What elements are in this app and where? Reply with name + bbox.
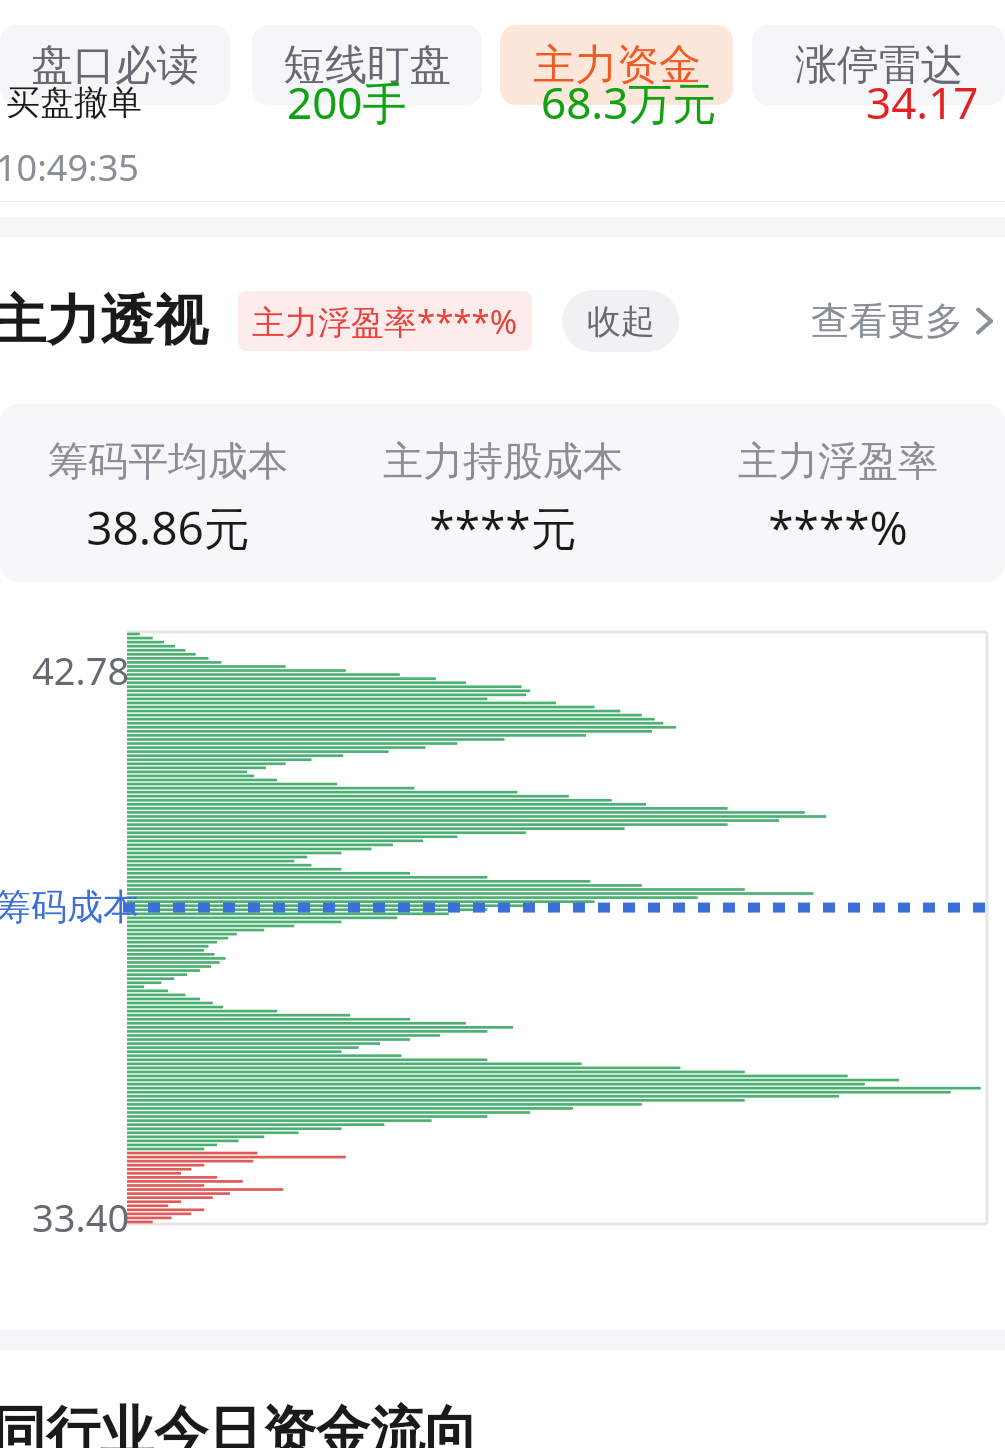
staticText: ****元 bbox=[429, 496, 577, 559]
staticText: 查看更多 bbox=[811, 297, 963, 345]
button[interactable]: 查看更多 bbox=[795, 287, 1005, 355]
button[interactable]: 筹码平均成本 bbox=[0, 404, 1005, 582]
staticText: 买盘撤单 bbox=[6, 81, 142, 124]
button[interactable]: 短线盯盘 bbox=[252, 25, 482, 105]
staticText: 同行业今日资金流向 bbox=[0, 1398, 478, 1448]
staticText: 33.40 bbox=[32, 1191, 130, 1243]
other: 筹码分布图 bbox=[0, 629, 1005, 1229]
staticText: 200手 bbox=[287, 72, 407, 132]
staticText: 收起 bbox=[587, 300, 655, 343]
staticText: 主力浮盈率 bbox=[738, 436, 938, 486]
staticText: 筹码成本 bbox=[0, 884, 139, 929]
staticText: 盘口必读 bbox=[31, 39, 199, 92]
staticText: 10:49:35 bbox=[0, 143, 139, 192]
button[interactable]: 主力资金 bbox=[500, 25, 733, 105]
button[interactable]: 盘口必读 bbox=[0, 25, 230, 105]
staticText: 42.78 bbox=[32, 644, 130, 696]
staticText: 主力资金 bbox=[533, 39, 701, 92]
button[interactable]: 收起 bbox=[562, 290, 679, 352]
staticText: 筹码平均成本 bbox=[48, 436, 288, 486]
staticText: 68.3万元 bbox=[541, 72, 717, 132]
button[interactable]: 主力浮盈率****% bbox=[238, 291, 532, 351]
staticText: ****% bbox=[768, 496, 908, 559]
staticText: 涨停雷达 bbox=[795, 39, 963, 92]
button[interactable]: 涨停雷达 bbox=[752, 25, 1005, 105]
staticText: 34.17 bbox=[866, 72, 979, 132]
staticText: 主力持股成本 bbox=[383, 436, 623, 486]
staticText: 短线盯盘 bbox=[283, 39, 451, 92]
staticText: 38.86元 bbox=[86, 496, 250, 559]
staticText: 主力浮盈率****% bbox=[252, 299, 518, 344]
staticText: 主力透视 bbox=[0, 287, 208, 355]
